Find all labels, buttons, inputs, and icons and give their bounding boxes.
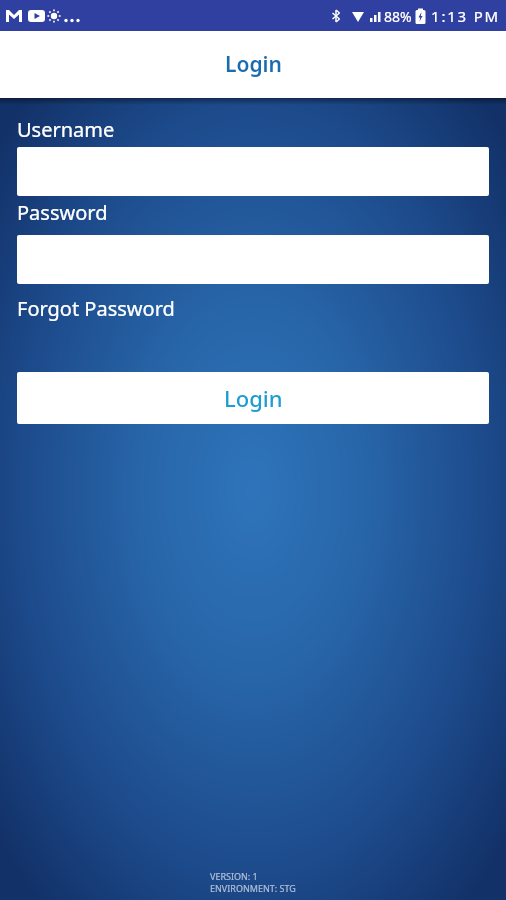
staticText: Login <box>224 383 283 413</box>
button[interactable]: Login <box>17 372 489 424</box>
staticText: 1:13 PM <box>431 6 500 26</box>
staticText: Username <box>17 116 115 143</box>
staticText: Password <box>17 199 108 226</box>
button[interactable]: Forgot Password <box>17 295 175 322</box>
staticText: VERSION: 1 <box>210 870 258 882</box>
staticText: 88% <box>384 7 412 26</box>
staticText: ENVIRONMENT: STG <box>210 882 296 894</box>
staticText: Login <box>225 50 282 79</box>
